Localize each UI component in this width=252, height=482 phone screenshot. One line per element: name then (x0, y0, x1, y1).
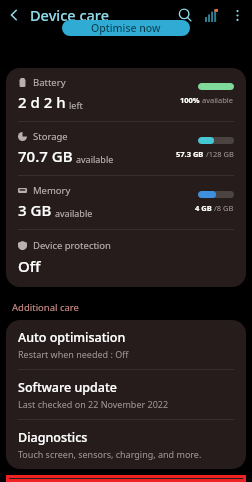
staticText: Battery (33, 76, 66, 89)
staticText: available (76, 153, 114, 165)
staticText: /128 GB (204, 149, 234, 159)
button[interactable]: Diagnostics (6, 420, 246, 469)
staticText: 70.7 GB (18, 146, 73, 166)
button[interactable]: Memory (6, 176, 246, 229)
staticText: Touch screen, sensors, charging, and mor… (18, 448, 202, 460)
staticText: Storage (33, 130, 68, 143)
staticText: Restart when needed : Off (18, 348, 129, 360)
staticText: Auto optimisation (18, 329, 126, 346)
staticText: Additional care (12, 301, 79, 314)
staticText: 100% (180, 95, 200, 105)
button[interactable]: Maintenance mode (9, 475, 243, 482)
staticText: available (55, 207, 93, 219)
button[interactable]: Maintenance mode (6, 475, 246, 482)
staticText: Device care (30, 5, 109, 25)
staticText: Device protection (33, 239, 111, 252)
staticText: 4 GB (195, 203, 212, 213)
button[interactable]: Search (172, 2, 198, 28)
button[interactable]: Auto optimisation (6, 320, 246, 369)
staticText: 3 GB (18, 200, 52, 220)
staticText: /8 GB (212, 203, 234, 213)
staticText: Off (18, 256, 41, 276)
button[interactable]: Back (0, 1, 28, 29)
staticText: 57.3 GB (176, 149, 204, 159)
button[interactable]: Storage (6, 122, 246, 175)
staticText: Memory (33, 184, 71, 197)
staticText: Last checked on 22 November 2022 (18, 398, 169, 410)
button[interactable]: Optimise now (62, 20, 190, 36)
button[interactable]: Device protection (6, 230, 246, 287)
button[interactable]: Battery (6, 68, 246, 121)
staticText: available (200, 95, 234, 105)
button[interactable]: Usage statistics (198, 2, 224, 28)
button[interactable]: More options (224, 2, 250, 28)
button[interactable]: Software update (6, 370, 246, 419)
staticText: 2 d 2 h (18, 92, 66, 112)
staticText: left (69, 99, 83, 111)
staticText: Software update (18, 379, 117, 396)
staticText: Optimise now (91, 21, 161, 35)
staticText: Diagnostics (18, 429, 88, 446)
